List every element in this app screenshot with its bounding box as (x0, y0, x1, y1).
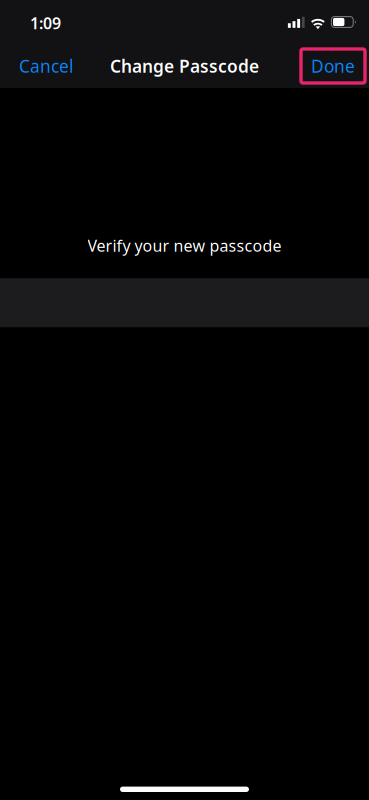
staticText: Change Passcode (110, 54, 259, 77)
button[interactable]: Cancel (0, 44, 85, 87)
staticText: Done (311, 54, 355, 77)
staticText: 1:09 (30, 12, 61, 34)
staticText: Verify your new passcode (87, 235, 281, 256)
staticText: Cancel (19, 54, 73, 77)
button[interactable]: Done (301, 49, 369, 83)
